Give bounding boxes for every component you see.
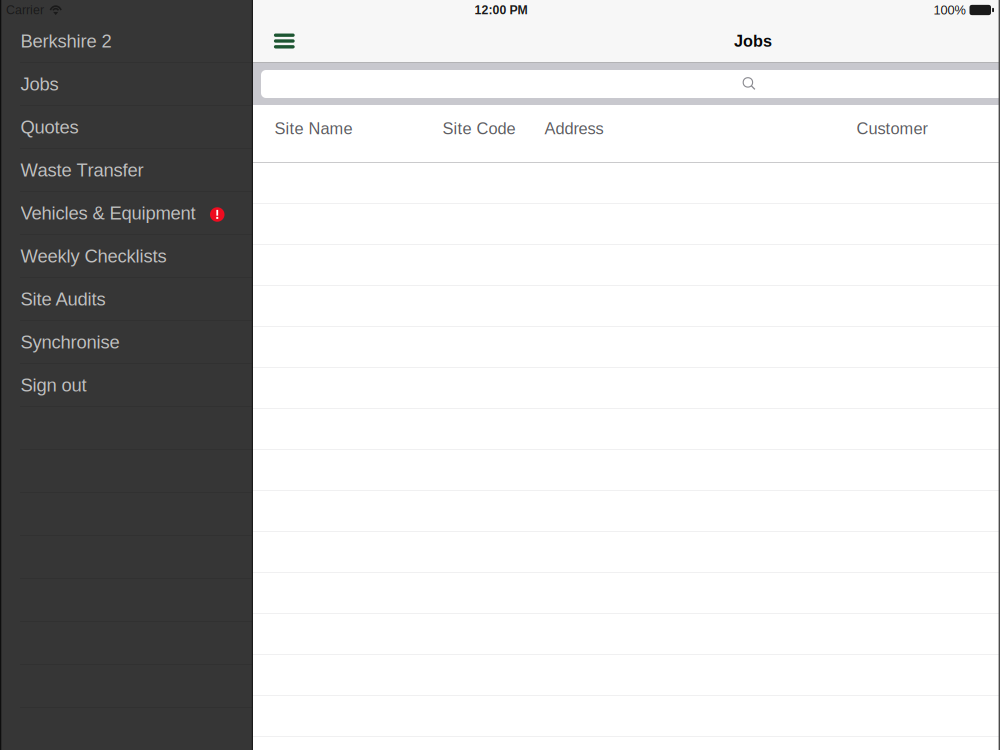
staticText: 12:00 PM [474,3,527,17]
staticText: Sign out [20,375,86,395]
staticText: Site Code [442,119,515,138]
button[interactable]: Berkshire 2 [0,20,253,63]
button[interactable]: Sign out [0,364,253,407]
staticText: Jobs [734,32,772,50]
staticText: Weekly Checklists [20,246,166,266]
button[interactable]: Synchronise [0,321,253,364]
staticText: Customer [856,119,927,138]
staticText: Site Name [274,119,352,138]
staticText: Waste Transfer [20,160,143,180]
staticText: Carrier [6,3,44,17]
staticText: Berkshire 2 [20,31,111,51]
staticText: Site Audits [20,289,105,309]
button[interactable]: Vehicles & Equipment [0,192,253,235]
button[interactable]: Waste Transfer [0,149,253,192]
staticText: Vehicles & Equipment [20,203,195,223]
staticText: Quotes [20,117,78,137]
staticText: 100% [933,3,965,17]
button[interactable]: Jobs [0,63,253,106]
staticText: Jobs [20,74,58,94]
button[interactable]: Quotes [0,106,253,149]
button[interactable]: Weekly Checklists [0,235,253,278]
staticText: Address [544,119,603,138]
button[interactable]: Site Audits [0,278,253,321]
staticText: Synchronise [20,332,119,352]
button[interactable]: Menu [263,20,305,62]
